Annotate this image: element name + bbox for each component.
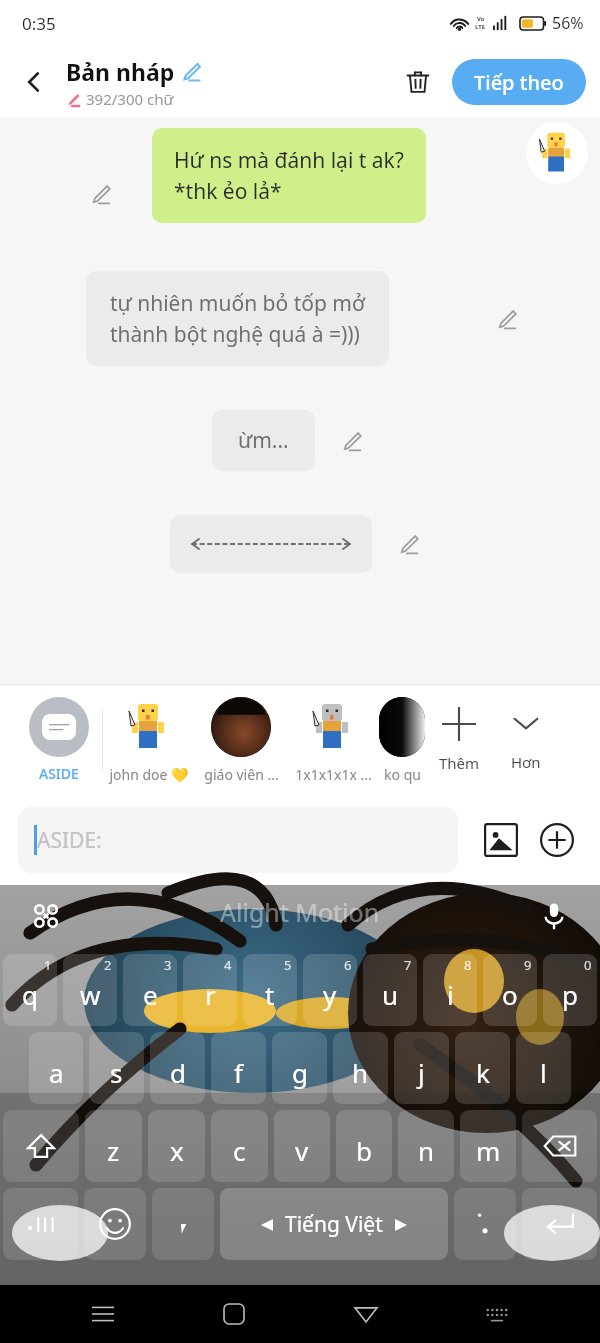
button[interactable]: john doe 💛 xyxy=(103,685,195,795)
button[interactable]: a xyxy=(29,1032,83,1104)
staticText: 0 xyxy=(584,956,592,974)
button[interactable]: Home xyxy=(206,1286,262,1342)
staticText: i xyxy=(447,977,454,1012)
staticText: LTE xyxy=(475,23,486,31)
button[interactable]: Hide keyboard xyxy=(469,1286,525,1342)
staticText: Tiếng Việt xyxy=(285,1210,383,1239)
button[interactable]: v xyxy=(274,1110,330,1182)
button[interactable]: Period xyxy=(454,1188,516,1260)
button[interactable]: 1 xyxy=(3,954,57,1026)
button[interactable]: Edit message xyxy=(492,304,522,334)
button[interactable]: Enter xyxy=(522,1188,597,1260)
button[interactable]: 0 xyxy=(543,954,597,1026)
staticText: s xyxy=(110,1055,123,1090)
button[interactable]: Tiếng Việt xyxy=(220,1188,448,1260)
button[interactable]: Shift xyxy=(3,1110,79,1182)
staticText: tự nhiên muốn bỏ tốp mở thành bột nghệ q… xyxy=(110,289,365,348)
staticText: 392/300 chữ xyxy=(86,89,174,109)
button[interactable]: b xyxy=(336,1110,392,1182)
button[interactable]: Hơn — More xyxy=(493,685,559,795)
button[interactable]: z xyxy=(85,1110,142,1182)
button[interactable]: Edit message xyxy=(86,179,116,209)
staticText: giáo viên ... xyxy=(204,765,279,784)
button[interactable]: c xyxy=(211,1110,268,1182)
button[interactable]: m xyxy=(460,1110,516,1182)
button[interactable]: l xyxy=(516,1032,571,1104)
staticText: Hứ ns mà đánh lại t ak? *thk ẻo lả* xyxy=(174,146,404,205)
staticText: u xyxy=(382,977,399,1012)
staticText: d xyxy=(170,1055,186,1090)
staticText: 8 xyxy=(464,956,472,974)
button[interactable]: k xyxy=(455,1032,510,1104)
button[interactable] xyxy=(170,515,372,573)
staticText: q xyxy=(22,977,38,1012)
button[interactable]: Backspace xyxy=(522,1110,597,1182)
staticText: r xyxy=(205,977,216,1012)
staticText: n xyxy=(418,1133,435,1168)
staticText: l xyxy=(540,1055,547,1090)
staticText: ừm... xyxy=(238,426,289,455)
staticText: m xyxy=(476,1133,501,1168)
staticText: Tiếp theo xyxy=(474,69,564,96)
button[interactable]: Bản nháp xyxy=(66,56,202,109)
button[interactable]: f xyxy=(211,1032,266,1104)
staticText: j xyxy=(418,1055,425,1090)
button[interactable]: x xyxy=(148,1110,205,1182)
button[interactable]: Recent apps xyxy=(75,1286,131,1342)
staticText: w xyxy=(80,977,101,1012)
staticText: a xyxy=(49,1055,64,1090)
button[interactable]: Tiếp theo xyxy=(452,59,586,105)
button[interactable]: Edit message xyxy=(337,426,367,456)
button[interactable]: h xyxy=(333,1032,388,1104)
button[interactable]: 3 xyxy=(123,954,177,1026)
button[interactable]: Emoji xyxy=(84,1188,146,1260)
staticText: 6 xyxy=(344,956,352,974)
button[interactable]: 8 xyxy=(423,954,477,1026)
staticText: 3 xyxy=(164,956,172,974)
button[interactable]: 9 xyxy=(483,954,537,1026)
staticText: e xyxy=(143,977,158,1012)
button[interactable]: 2 xyxy=(63,954,117,1026)
staticText: Hơn xyxy=(511,752,541,772)
staticText: ko qu xyxy=(384,765,421,784)
staticText: 1x1x1x1x ... xyxy=(295,765,372,784)
button[interactable]: Hứ ns mà đánh lại t ak? *thk ẻo lả* xyxy=(152,128,426,223)
staticText: z xyxy=(107,1133,120,1168)
button[interactable]: Back xyxy=(338,1286,394,1342)
button[interactable]: Comma xyxy=(152,1188,214,1260)
button[interactable]: Edit message xyxy=(394,529,424,559)
staticText: o xyxy=(502,977,518,1012)
button[interactable]: giáo viên ... xyxy=(195,685,287,795)
button[interactable]: 6 xyxy=(303,954,357,1026)
staticText: v xyxy=(295,1133,309,1168)
staticText: f xyxy=(234,1055,243,1090)
button[interactable]: 7 xyxy=(363,954,417,1026)
button[interactable]: ASIDE: xyxy=(18,807,458,873)
button[interactable]: tự nhiên muốn bỏ tốp mở thành bột nghệ q… xyxy=(86,271,389,366)
staticText: h xyxy=(352,1055,369,1090)
staticText: john doe 💛 xyxy=(109,765,189,784)
staticText: x xyxy=(170,1133,184,1168)
button[interactable]: 1x1x1x1x ... xyxy=(287,685,379,795)
button[interactable]: ko qu xyxy=(379,685,425,795)
button[interactable]: ừm... xyxy=(212,410,315,471)
button[interactable]: Delete draft xyxy=(394,58,442,106)
button[interactable]: d xyxy=(150,1032,205,1104)
button[interactable]: Thêm — Add character xyxy=(425,685,493,795)
button[interactable]: 4 xyxy=(183,954,237,1026)
button[interactable]: 5 xyxy=(243,954,297,1026)
staticText: c xyxy=(233,1133,246,1168)
button[interactable]: More options xyxy=(532,815,582,865)
button[interactable]: j xyxy=(394,1032,449,1104)
button[interactable]: Insert image xyxy=(476,815,526,865)
button[interactable]: Keyboard toolbar xyxy=(26,896,66,936)
button[interactable]: Back xyxy=(8,56,60,108)
button[interactable]: g xyxy=(272,1032,327,1104)
button[interactable]: n xyxy=(398,1110,454,1182)
button[interactable]: Voice input xyxy=(534,896,574,936)
button[interactable]: Numbers xyxy=(3,1188,78,1260)
button[interactable]: s xyxy=(89,1032,144,1104)
staticText: 56% xyxy=(552,12,584,34)
button[interactable]: ASIDE xyxy=(16,685,102,795)
staticText: b xyxy=(356,1133,372,1168)
